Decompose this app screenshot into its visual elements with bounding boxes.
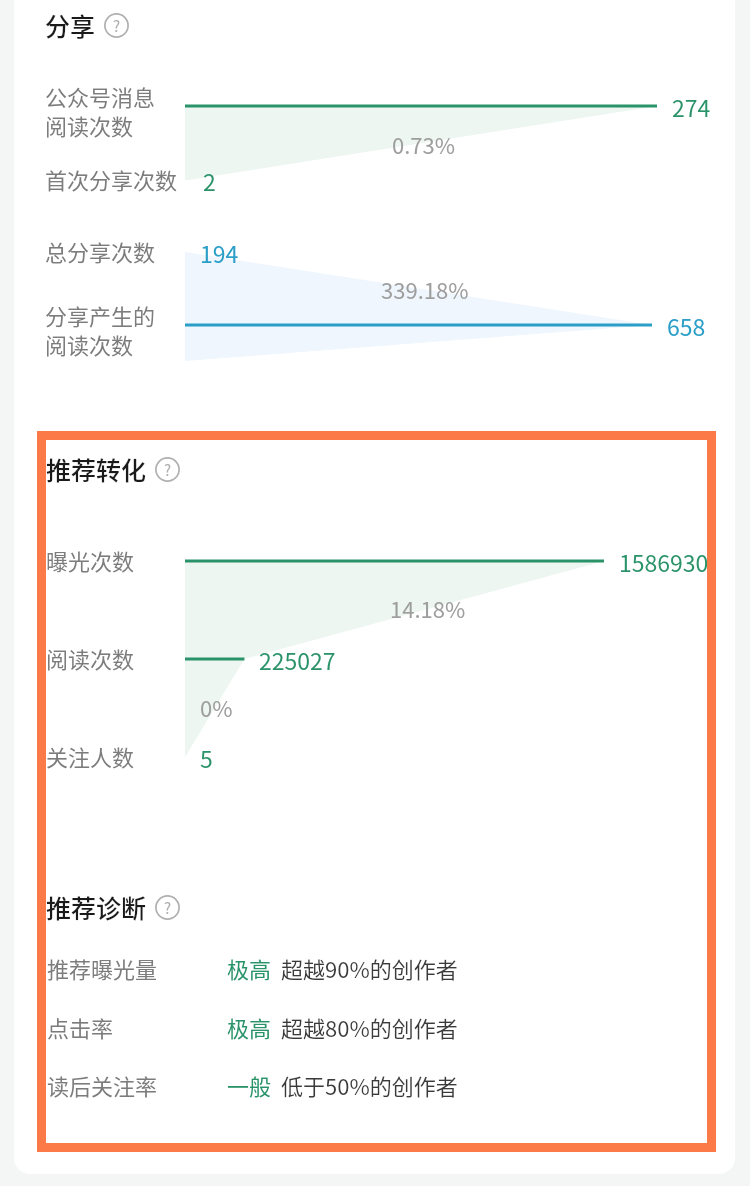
staticText: 分享	[45, 7, 96, 43]
staticText: 公众号消息 阅读次数	[45, 83, 156, 141]
staticText: 0.73%	[392, 133, 456, 159]
staticText: 点击率	[47, 1011, 114, 1043]
staticText: 阅读次数	[46, 645, 135, 674]
staticText: 首次分享次数	[45, 166, 178, 195]
staticText: 低于50%的创作者	[281, 1069, 458, 1101]
staticText: ?	[164, 459, 172, 481]
staticText: 超越80%的创作者	[281, 1011, 458, 1043]
staticText: ?	[164, 897, 172, 919]
staticText: 274	[672, 95, 711, 122]
staticText: 总分享次数	[45, 238, 156, 267]
staticText: 5	[200, 746, 213, 773]
staticText: 339.18%	[381, 278, 469, 304]
staticText: 推荐诊断	[46, 889, 147, 925]
staticText: 关注人数	[46, 743, 135, 772]
button[interactable]: 推荐曝光量	[14, 939, 735, 997]
button[interactable]: About 分享	[104, 13, 129, 38]
staticText: 曝光次数	[46, 547, 135, 576]
staticText: 194	[200, 241, 239, 268]
staticText: 1586930	[619, 550, 709, 577]
staticText: 推荐转化	[46, 451, 147, 487]
staticText: 2	[203, 169, 216, 196]
button[interactable]: 点击率	[14, 998, 735, 1056]
staticText: 推荐曝光量	[47, 952, 158, 984]
staticText: 0%	[200, 696, 233, 722]
staticText: 一般	[227, 1069, 272, 1101]
staticText: 超越90%的创作者	[281, 952, 458, 984]
button[interactable]: About 推荐诊断	[155, 895, 180, 920]
staticText: ?	[113, 15, 121, 37]
button[interactable]: 读后关注率	[14, 1056, 735, 1114]
staticText: 658	[667, 314, 706, 341]
staticText: 分享产生的 阅读次数	[45, 302, 156, 360]
button[interactable]: About 推荐转化	[155, 457, 180, 482]
staticText: 14.18%	[390, 597, 466, 623]
staticText: 极高	[227, 952, 272, 984]
staticText: 225027	[259, 648, 336, 675]
staticText: 极高	[227, 1011, 272, 1043]
staticText: 读后关注率	[47, 1069, 158, 1101]
